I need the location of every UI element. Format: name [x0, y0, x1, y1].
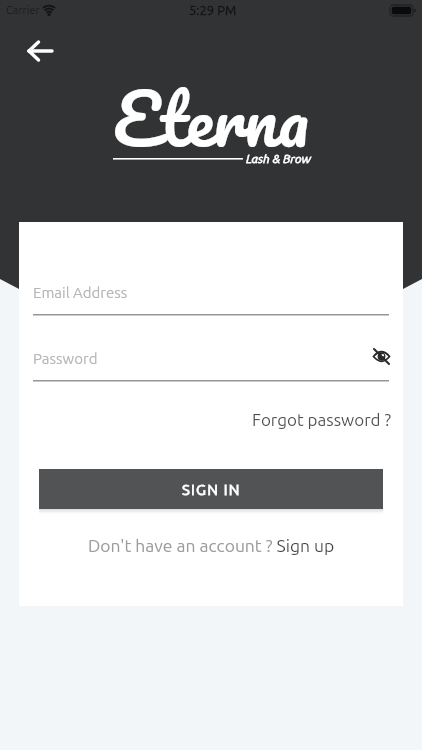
button[interactable]: Email Address: [33, 280, 389, 304]
staticText: Lash & Brow: [246, 152, 311, 165]
button[interactable]: Forgot password ?: [219, 407, 392, 431]
button[interactable]: SIGN IN: [39, 469, 383, 509]
staticText: Carrier: [6, 4, 40, 16]
staticText: Password: [33, 350, 98, 367]
staticText: Forgot password ?: [252, 410, 392, 429]
button[interactable]: Password: [33, 346, 389, 370]
staticText: SIGN IN: [182, 481, 241, 498]
button[interactable]: Don't have an account ? Sign up: [19, 534, 403, 558]
staticText: Eterna: [113, 58, 309, 158]
staticText: Email Address: [33, 284, 128, 301]
staticText: Don't have an account ? Sign up: [88, 536, 335, 556]
button[interactable]: [366, 341, 396, 371]
staticText: 5:29 PM: [189, 3, 237, 18]
button[interactable]: [18, 32, 62, 70]
